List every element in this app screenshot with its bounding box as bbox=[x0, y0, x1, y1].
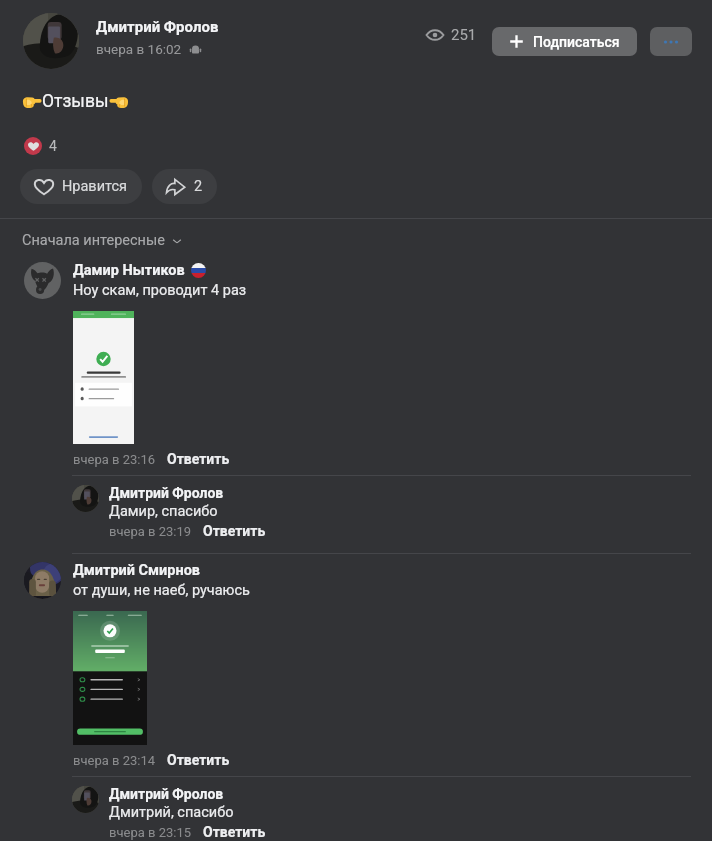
button[interactable]: Ответить bbox=[167, 451, 230, 467]
button[interactable]: Нравится bbox=[20, 169, 142, 204]
button[interactable]: More options bbox=[650, 27, 692, 56]
staticText: Ответить bbox=[167, 451, 230, 467]
staticText: Дамир, спасибо bbox=[109, 503, 218, 520]
staticText: Ответить bbox=[203, 523, 266, 539]
staticText: Дамир Нытиков bbox=[73, 262, 185, 279]
staticText: вчера в 16:02 bbox=[96, 41, 182, 57]
button[interactable]: Ответить bbox=[203, 523, 266, 539]
staticText: вчера в 23:19 bbox=[109, 524, 192, 539]
staticText: Ответить bbox=[203, 824, 266, 840]
button[interactable]: Подписаться bbox=[492, 27, 637, 56]
staticText: 251 bbox=[451, 26, 477, 44]
staticText: вчера в 23:15 bbox=[109, 825, 192, 840]
staticText: Сначала интересные bbox=[22, 232, 165, 249]
staticText: Подписаться bbox=[533, 34, 620, 50]
staticText: вчера в 23:14 bbox=[73, 753, 156, 768]
staticText: 2 bbox=[194, 178, 203, 195]
button[interactable]: Ответить bbox=[167, 752, 230, 768]
staticText: Дмитрий Фролов bbox=[109, 485, 224, 501]
button[interactable]: Ответить bbox=[203, 824, 266, 840]
staticText: Ноу скам, проводит 4 раз bbox=[73, 282, 247, 299]
other: Views bbox=[426, 26, 444, 44]
button[interactable]: 2 bbox=[152, 169, 217, 204]
button[interactable]: Сначала интересные bbox=[22, 232, 183, 249]
staticText: 4 bbox=[49, 138, 57, 154]
staticText: Отзывы bbox=[42, 91, 109, 112]
staticText: Дмитрий, спасибо bbox=[109, 804, 234, 821]
staticText: Ответить bbox=[167, 752, 230, 768]
staticText: Нравится bbox=[62, 178, 127, 195]
staticText: от души, не наеб, ручаюсь bbox=[73, 582, 250, 599]
staticText: Дмитрий Смирнов bbox=[73, 562, 201, 579]
staticText: вчера в 23:16 bbox=[73, 452, 156, 467]
staticText: Дмитрий Фролов bbox=[109, 786, 224, 802]
staticText: Дмитрий Фролов bbox=[96, 18, 219, 36]
